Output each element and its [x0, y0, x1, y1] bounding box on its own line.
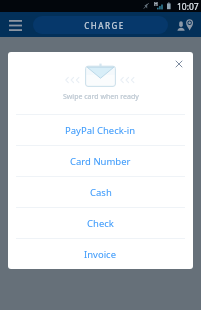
button[interactable]: Close	[168, 53, 190, 75]
staticText: Cash	[90, 186, 112, 199]
staticText: CHARGE	[84, 20, 125, 31]
button[interactable]: Cash	[8, 177, 193, 207]
button[interactable]: Customer location	[175, 14, 199, 35]
staticText: 10:07	[177, 1, 199, 13]
button[interactable]: PayPal Check-in	[8, 115, 193, 145]
button[interactable]: Check	[8, 208, 193, 238]
staticText: Card Number	[70, 155, 131, 168]
button[interactable]: Menu	[6, 15, 24, 35]
button[interactable]: Card Number	[8, 146, 193, 176]
button[interactable]: CHARGE	[33, 16, 168, 34]
staticText: PayPal Check-in	[65, 124, 136, 137]
staticText: H	[154, 1, 158, 8]
staticText: Check	[87, 217, 114, 230]
staticText: Invoice	[84, 248, 117, 261]
staticText: Swipe card when ready	[63, 92, 139, 102]
button[interactable]: Invoice	[8, 239, 193, 269]
